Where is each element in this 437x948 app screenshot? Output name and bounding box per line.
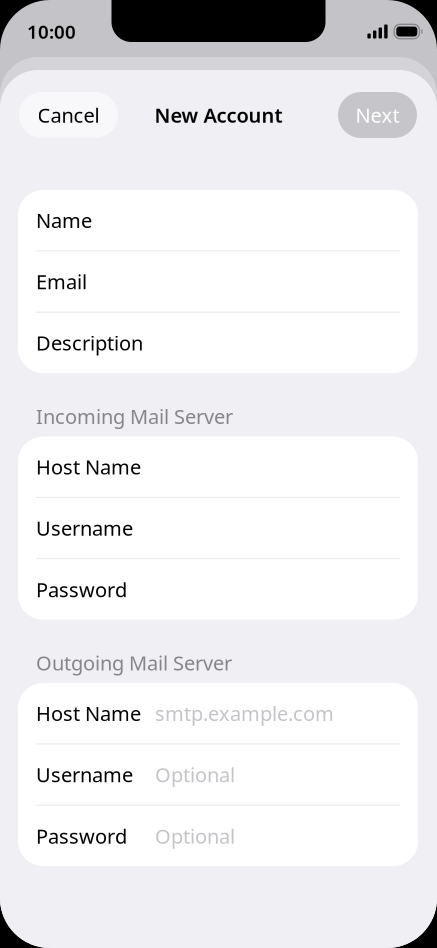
button[interactable]: Email	[18, 251, 418, 312]
staticText: Name	[36, 207, 92, 233]
button[interactable]: Description	[18, 313, 418, 373]
staticText: Description	[36, 329, 143, 356]
staticText: Host Name	[36, 700, 141, 727]
staticText: Next	[355, 102, 399, 128]
button[interactable]: Password	[18, 559, 418, 619]
button[interactable]: Username	[18, 744, 418, 805]
staticText: New Account	[154, 102, 282, 128]
button[interactable]: Password	[18, 806, 418, 866]
staticText: 10:00	[27, 19, 76, 44]
button[interactable]: Name	[18, 190, 418, 250]
staticText: smtp.example.com	[155, 700, 334, 727]
button[interactable]: Host Name	[18, 436, 418, 497]
staticText: Outgoing Mail Server	[36, 649, 232, 676]
staticText: Cancel	[37, 102, 99, 128]
button[interactable]: Host Name	[18, 683, 418, 743]
staticText: Username	[36, 515, 133, 541]
staticText: Password	[36, 576, 127, 603]
button[interactable]: Username	[18, 498, 418, 558]
staticText: Optional	[155, 823, 235, 849]
staticText: Incoming Mail Server	[36, 403, 233, 430]
button[interactable]: Cancel	[19, 92, 118, 138]
button[interactable]: Next	[338, 92, 417, 138]
staticText: Password	[36, 823, 127, 849]
staticText: Host Name	[36, 453, 141, 480]
staticText: Email	[36, 268, 87, 295]
staticText: Optional	[155, 761, 235, 788]
staticText: Username	[36, 761, 133, 788]
